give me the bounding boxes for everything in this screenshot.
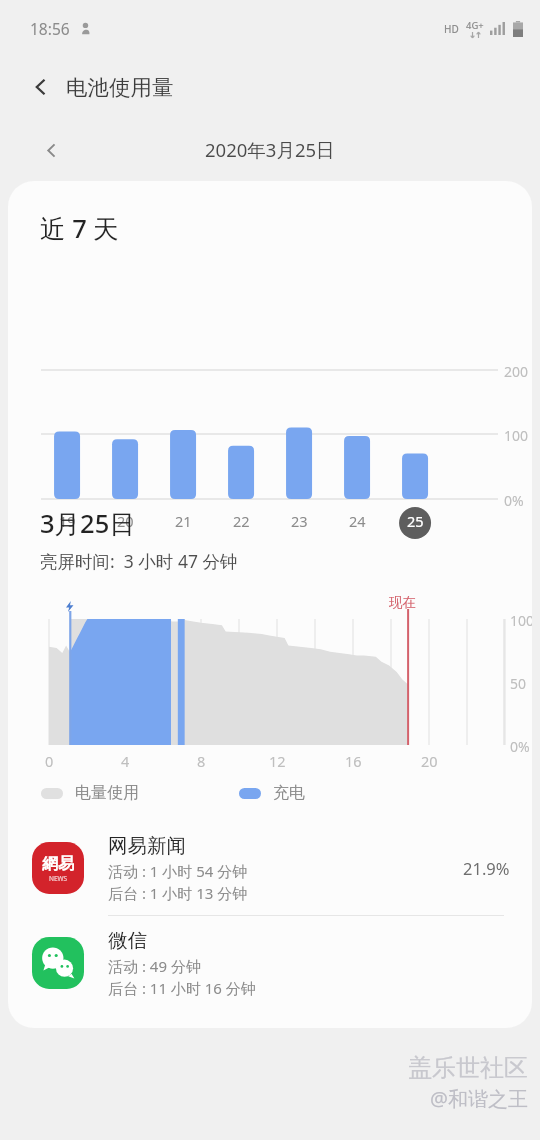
staticText: 19 (59, 511, 76, 531)
staticText: 0% (510, 737, 530, 756)
staticText: 微信 (108, 928, 147, 953)
staticText: @和谐之王 (430, 1085, 528, 1112)
staticText: 100 (510, 611, 532, 630)
staticText: 200 (504, 362, 529, 381)
staticText: 现在 (389, 594, 416, 611)
staticText: 50 (510, 674, 527, 693)
staticText: 电池使用量 (66, 74, 174, 101)
staticText: NEWS (49, 874, 68, 883)
staticText: 充电 (273, 783, 305, 803)
staticText: 后台 : 1 小时 13 分钟 (108, 883, 248, 903)
button[interactable]: 微信 (8, 916, 532, 1010)
staticText: 电量使用 (75, 783, 139, 803)
staticText: 0% (504, 491, 524, 510)
staticText: 3月25日 (40, 506, 135, 541)
staticText: 24 (349, 511, 366, 531)
button[interactable]: 網易 (8, 821, 532, 915)
staticText: 21 (175, 511, 192, 531)
staticText: 近 7 天 (40, 211, 119, 246)
staticText: 后台 : 11 小时 16 分钟 (108, 978, 256, 998)
staticText: 2020年3月25日 (205, 137, 335, 162)
staticText: 21.9% (463, 857, 510, 879)
button[interactable]: Back (0, 56, 194, 118)
staticText: HD (444, 22, 459, 36)
staticText: 8 (197, 751, 206, 771)
staticText: 4G+ (466, 19, 484, 32)
other: Back (30, 76, 52, 98)
staticText: 23 (291, 511, 308, 531)
staticText: 22 (233, 511, 250, 531)
staticText: 4 (121, 751, 130, 771)
staticText: 网易新闻 (108, 833, 186, 858)
staticText: 20 (117, 511, 134, 531)
staticText: 盖乐世社区 (408, 1053, 528, 1083)
staticText: 網易 (42, 854, 74, 874)
staticText: 活动 : 49 分钟 (108, 956, 201, 976)
staticText: 18:56 (30, 18, 70, 39)
staticText: 25 (407, 511, 424, 531)
staticText: 0 (45, 751, 54, 771)
staticText: 亮屏时间: 3 小时 47 分钟 (40, 549, 238, 573)
staticText: 活动 : 1 小时 54 分钟 (108, 861, 248, 881)
staticText: 12 (269, 751, 286, 771)
staticText: 16 (345, 751, 362, 771)
staticText: 100 (504, 426, 529, 445)
staticText: 20 (421, 751, 438, 771)
button[interactable]: Previous day (34, 133, 68, 167)
